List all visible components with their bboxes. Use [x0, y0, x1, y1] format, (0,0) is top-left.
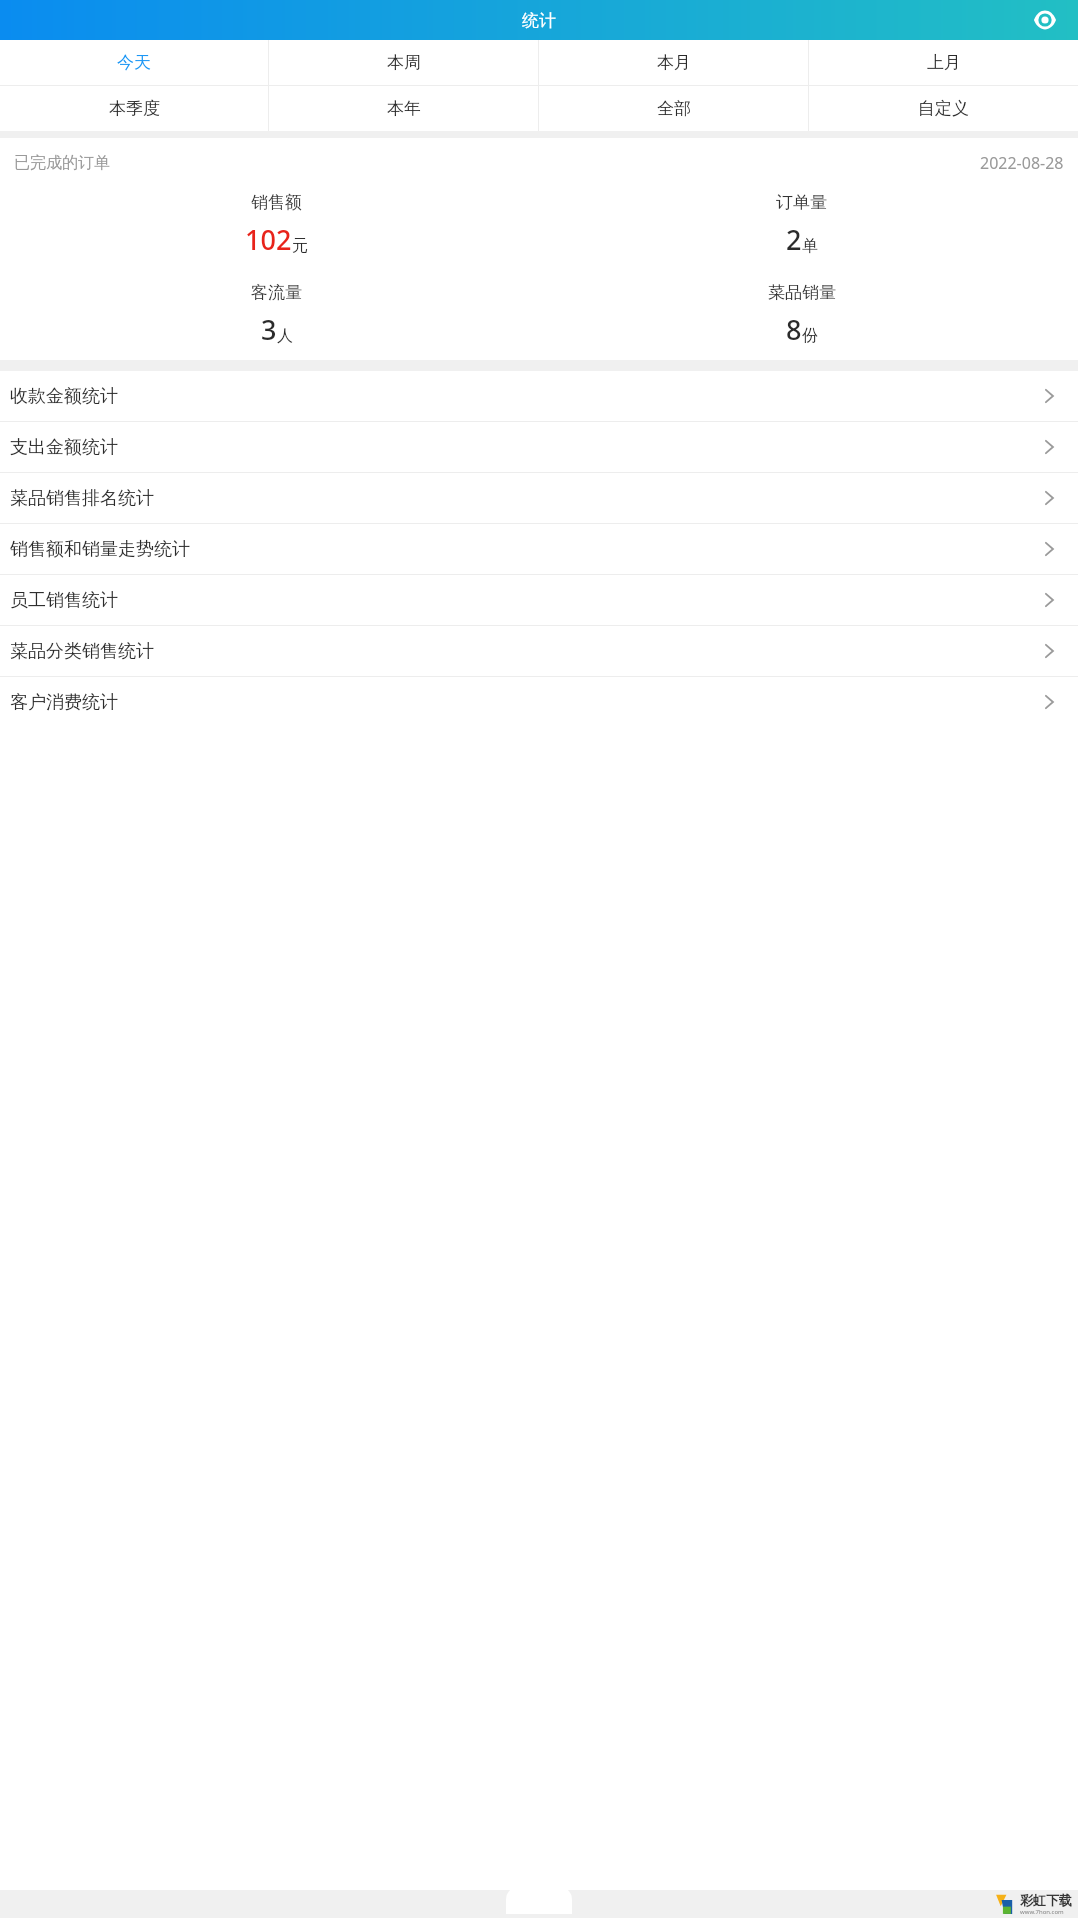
staticText: 自定义 — [918, 98, 969, 119]
button[interactable]: 员工销售统计 — [0, 575, 1078, 625]
button[interactable]: 全部 — [539, 86, 808, 131]
staticText: 客户消费统计 — [10, 691, 1038, 714]
button[interactable]: 本年 — [269, 86, 538, 131]
button[interactable]: 本月 — [539, 40, 808, 85]
staticText: 销售额 — [251, 192, 302, 213]
staticText: 菜品分类销售统计 — [10, 640, 1038, 663]
staticText: www.7hon.com — [1020, 1908, 1064, 1916]
staticText: 份 — [802, 326, 818, 346]
staticText: 彩虹下载 — [1020, 1892, 1072, 1908]
staticText: 菜品销售排名统计 — [10, 487, 1038, 510]
staticText: 2022-08-28 — [980, 152, 1064, 174]
staticText: 已完成的订单 — [14, 153, 110, 173]
button[interactable]: 收款金额统计 — [0, 371, 1078, 421]
staticText: 本年 — [387, 98, 421, 119]
button[interactable]: 菜品销售排名统计 — [0, 473, 1078, 523]
staticText: 本月 — [657, 52, 691, 73]
button[interactable]: 客户消费统计 — [0, 677, 1078, 727]
staticText: 3 — [261, 311, 277, 348]
staticText: 支出金额统计 — [10, 436, 1038, 459]
staticText: 今天 — [117, 52, 151, 73]
staticText: 元 — [292, 236, 308, 256]
button[interactable]: 本季度 — [0, 86, 268, 131]
staticText: 全部 — [657, 98, 691, 119]
button[interactable]: 销售额和销量走势统计 — [0, 524, 1078, 574]
staticText: 102 — [245, 221, 292, 258]
staticText: 订单量 — [776, 192, 827, 213]
button[interactable]: 菜品分类销售统计 — [0, 626, 1078, 676]
staticText: 客流量 — [251, 282, 302, 303]
staticText: 单 — [802, 236, 818, 256]
staticText: 2 — [786, 221, 802, 258]
button[interactable]: 支出金额统计 — [0, 422, 1078, 472]
button[interactable]: 今天 — [0, 40, 268, 85]
staticText: 人 — [277, 326, 293, 346]
staticText: 员工销售统计 — [10, 589, 1038, 612]
button[interactable]: 自定义 — [809, 86, 1078, 131]
staticText: 上月 — [927, 52, 961, 73]
staticText: 菜品销量 — [768, 282, 836, 303]
staticText: 8 — [786, 311, 802, 348]
staticText: 本季度 — [109, 98, 160, 119]
staticText: 本周 — [387, 52, 421, 73]
staticText: 收款金额统计 — [10, 385, 1038, 408]
button[interactable]: 上月 — [809, 40, 1078, 85]
staticText: 销售额和销量走势统计 — [10, 538, 1038, 561]
staticText: 统计 — [522, 10, 556, 31]
button[interactable]: Toggle visibility — [1028, 3, 1062, 37]
button[interactable]: 本周 — [269, 40, 538, 85]
